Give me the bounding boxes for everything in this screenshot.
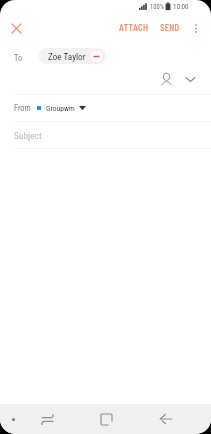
- button[interactable]: Recent apps: [35, 407, 59, 431]
- button[interactable]: Back: [154, 407, 178, 431]
- staticText: SEND: [160, 23, 180, 33]
- staticText: Groupwm: [46, 104, 75, 113]
- button[interactable]: SEND: [156, 18, 184, 38]
- button[interactable]: Subject: [0, 122, 211, 148]
- staticText: 10:00: [173, 3, 189, 11]
- staticText: Zoe Taylor: [48, 51, 86, 62]
- staticText: From: [14, 103, 31, 113]
- button[interactable]: Contacts: [154, 67, 178, 91]
- button[interactable]: Home: [94, 407, 118, 431]
- button[interactable]: From: [0, 95, 211, 121]
- staticText: 100%: [150, 3, 164, 11]
- button[interactable]: Show navigation bar: [3, 409, 23, 429]
- button[interactable]: Expand recipients: [178, 67, 202, 91]
- staticText: ATTACH: [119, 23, 149, 33]
- button[interactable]: Zoe Taylor: [39, 48, 106, 64]
- button[interactable]: More options: [184, 16, 208, 40]
- staticText: To: [14, 53, 23, 63]
- button[interactable]: Close: [4, 16, 28, 40]
- button[interactable]: ATTACH: [115, 18, 153, 38]
- staticText: Subject: [14, 130, 42, 141]
